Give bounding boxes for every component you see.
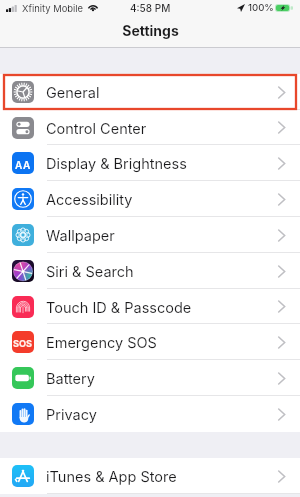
staticText: Control Center bbox=[46, 120, 147, 138]
staticText: Siri & Search bbox=[46, 263, 134, 281]
button[interactable]: SOS bbox=[0, 324, 300, 360]
staticText: iTunes & App Store bbox=[46, 468, 177, 486]
staticText: SOS bbox=[13, 338, 33, 349]
staticText: Xfinity Mobile bbox=[22, 3, 84, 14]
staticText: AA bbox=[15, 159, 31, 171]
staticText: Display & Brightness bbox=[46, 155, 187, 173]
button[interactable]: Touch ID & Passcode bbox=[0, 289, 300, 324]
staticText: General bbox=[46, 84, 100, 102]
staticText: Settings bbox=[122, 22, 179, 39]
staticText: Emergency SOS bbox=[46, 334, 157, 352]
button[interactable]: Control Center bbox=[0, 110, 300, 145]
button[interactable]: iTunes & App Store bbox=[0, 458, 300, 494]
button[interactable]: General bbox=[0, 74, 300, 110]
button[interactable]: Accessibility bbox=[0, 181, 300, 217]
staticText: 4:58 PM bbox=[130, 2, 171, 14]
staticText: 100% bbox=[248, 2, 274, 14]
staticText: Touch ID & Passcode bbox=[46, 299, 192, 317]
staticText: Wallpaper bbox=[46, 227, 115, 245]
staticText: Battery bbox=[46, 370, 95, 388]
button[interactable]: Wallpaper bbox=[0, 217, 300, 253]
button[interactable]: Siri & Search bbox=[0, 253, 300, 289]
staticText: Accessibility bbox=[46, 191, 133, 209]
button[interactable]: AA bbox=[0, 145, 300, 181]
button[interactable]: Privacy bbox=[0, 396, 300, 432]
staticText: Privacy bbox=[46, 406, 97, 424]
button[interactable]: Battery bbox=[0, 360, 300, 396]
